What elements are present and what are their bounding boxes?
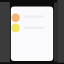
button[interactable] <box>4 12 16 16</box>
button[interactable] <box>4 7 16 11</box>
